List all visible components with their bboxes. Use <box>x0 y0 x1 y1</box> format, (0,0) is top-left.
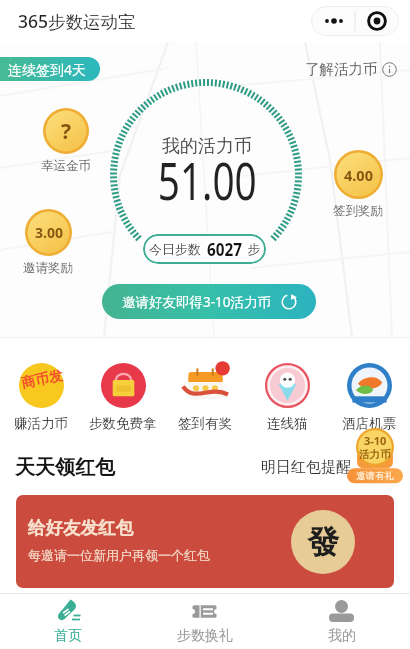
staticText: 3.00 <box>35 223 63 242</box>
staticText: 首页 <box>54 627 82 644</box>
staticText: 每邀请一位新用户再领一个红包 <box>28 547 210 563</box>
staticText: 365步数运动宝 <box>18 9 136 33</box>
button[interactable]: 首页 <box>0 594 136 649</box>
button[interactable]: 步数免费拿 <box>82 363 164 432</box>
button[interactable]: 3-10 <box>347 425 403 485</box>
button[interactable]: 3.00 <box>13 209 83 276</box>
button[interactable]: 我的 <box>273 594 410 649</box>
button[interactable]: 连线猫 <box>246 363 328 432</box>
staticText: 签到有奖 <box>178 415 232 432</box>
button[interactable]: 今日步数 <box>143 234 266 264</box>
staticText: 4.00 <box>344 165 373 185</box>
staticText: 天天领红包 <box>15 455 115 480</box>
button[interactable]: More options <box>311 6 399 36</box>
button[interactable]: 给好友发红包 <box>16 495 394 588</box>
staticText: 签到奖励 <box>333 203 383 219</box>
staticText: 连线猫 <box>267 415 308 432</box>
staticText: 邀请有礼 <box>356 470 394 482</box>
staticText: 3-10 <box>364 433 387 448</box>
staticText: 我的活力币 <box>162 135 252 158</box>
staticText: 今日步数 <box>149 240 205 258</box>
staticText: 商币发 <box>20 367 64 393</box>
button[interactable]: 签到有奖 <box>164 363 246 432</box>
staticText: 51.00 <box>158 145 257 214</box>
button[interactable]: 邀请好友即得3-10活力币 <box>102 284 316 319</box>
button[interactable]: 明日红包提醒 <box>261 458 351 477</box>
button[interactable]: 了解活力币 <box>297 57 410 81</box>
staticText: 步 <box>244 240 261 258</box>
button[interactable]: 商币发 <box>0 363 82 432</box>
staticText: 赚活力币 <box>14 415 68 432</box>
staticText: 發 <box>307 522 339 562</box>
button[interactable]: 4.00 <box>323 150 393 219</box>
staticText: 给好友发红包 <box>28 517 133 539</box>
staticText: 活力币 <box>359 448 391 461</box>
button[interactable]: 步数换礼 <box>136 594 273 649</box>
staticText: 了解活力币 <box>305 60 378 78</box>
staticText: ? <box>61 117 72 146</box>
button[interactable]: ? <box>31 108 101 174</box>
staticText: 我的 <box>328 627 356 644</box>
staticText: 步数换礼 <box>177 627 233 644</box>
button[interactable]: 连续签到4天 <box>0 57 100 81</box>
staticText: 邀请奖励 <box>23 260 73 276</box>
staticText: 6027 <box>207 238 242 261</box>
staticText: 连续签到4天 <box>8 60 87 79</box>
staticText: 幸运金币 <box>41 158 91 174</box>
staticText: 步数免费拿 <box>89 415 157 432</box>
staticText: 邀请好友即得3-10活力币 <box>122 293 272 311</box>
button[interactable]: 酒店机票 <box>328 363 410 432</box>
staticText: 酒店机票 <box>342 415 396 432</box>
